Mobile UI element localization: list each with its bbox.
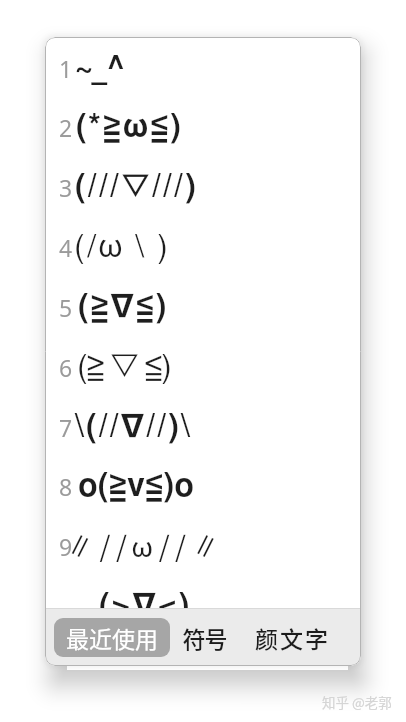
staticText: 3 [59,172,73,203]
staticText: (>∇<) [99,590,192,608]
staticText: 知乎 @老郭 [322,692,392,712]
staticText: 符号 [183,621,227,654]
staticText: (≧∇≦) [78,291,169,323]
button[interactable]: 5 [45,278,361,337]
staticText: o(≧v≦)o [78,470,195,502]
staticText: 颜文字 [254,621,329,654]
button[interactable]: 9 [45,517,361,576]
staticText: 7 [59,412,73,443]
button[interactable]: 3 [45,158,361,217]
button[interactable]: 2 [45,98,361,157]
staticText: 1 [59,53,73,84]
staticText: (/ω \ ) [74,231,171,263]
button[interactable]: 4 [45,218,361,277]
button[interactable]: 7 [45,398,361,457]
staticText: ~_^ [76,52,125,84]
staticText: (*≧ω≦) [76,111,183,143]
staticText: (≧ ▽ ≦) [77,351,171,383]
button[interactable]: 符号 [173,615,237,660]
staticText: \(//∇//)\ [75,411,192,443]
staticText: 4 [59,232,73,263]
staticText: 8 [59,471,73,502]
button[interactable]: 最近使用 [54,618,170,657]
staticText: 6 [59,352,73,383]
button[interactable]: 颜文字 [244,615,339,660]
button[interactable]: 1 [45,39,361,98]
staticText: 9 [59,531,73,562]
staticText: 2 [59,112,73,143]
button[interactable]: 6 [45,338,361,397]
staticText: 最近使用 [66,621,158,654]
button[interactable]: (>∇<) [45,577,361,608]
staticText: ∥//ω//∥ [66,525,225,566]
staticText: 5 [59,292,73,323]
staticText: (///▽///) [75,171,199,203]
button[interactable]: 8 [45,457,361,516]
